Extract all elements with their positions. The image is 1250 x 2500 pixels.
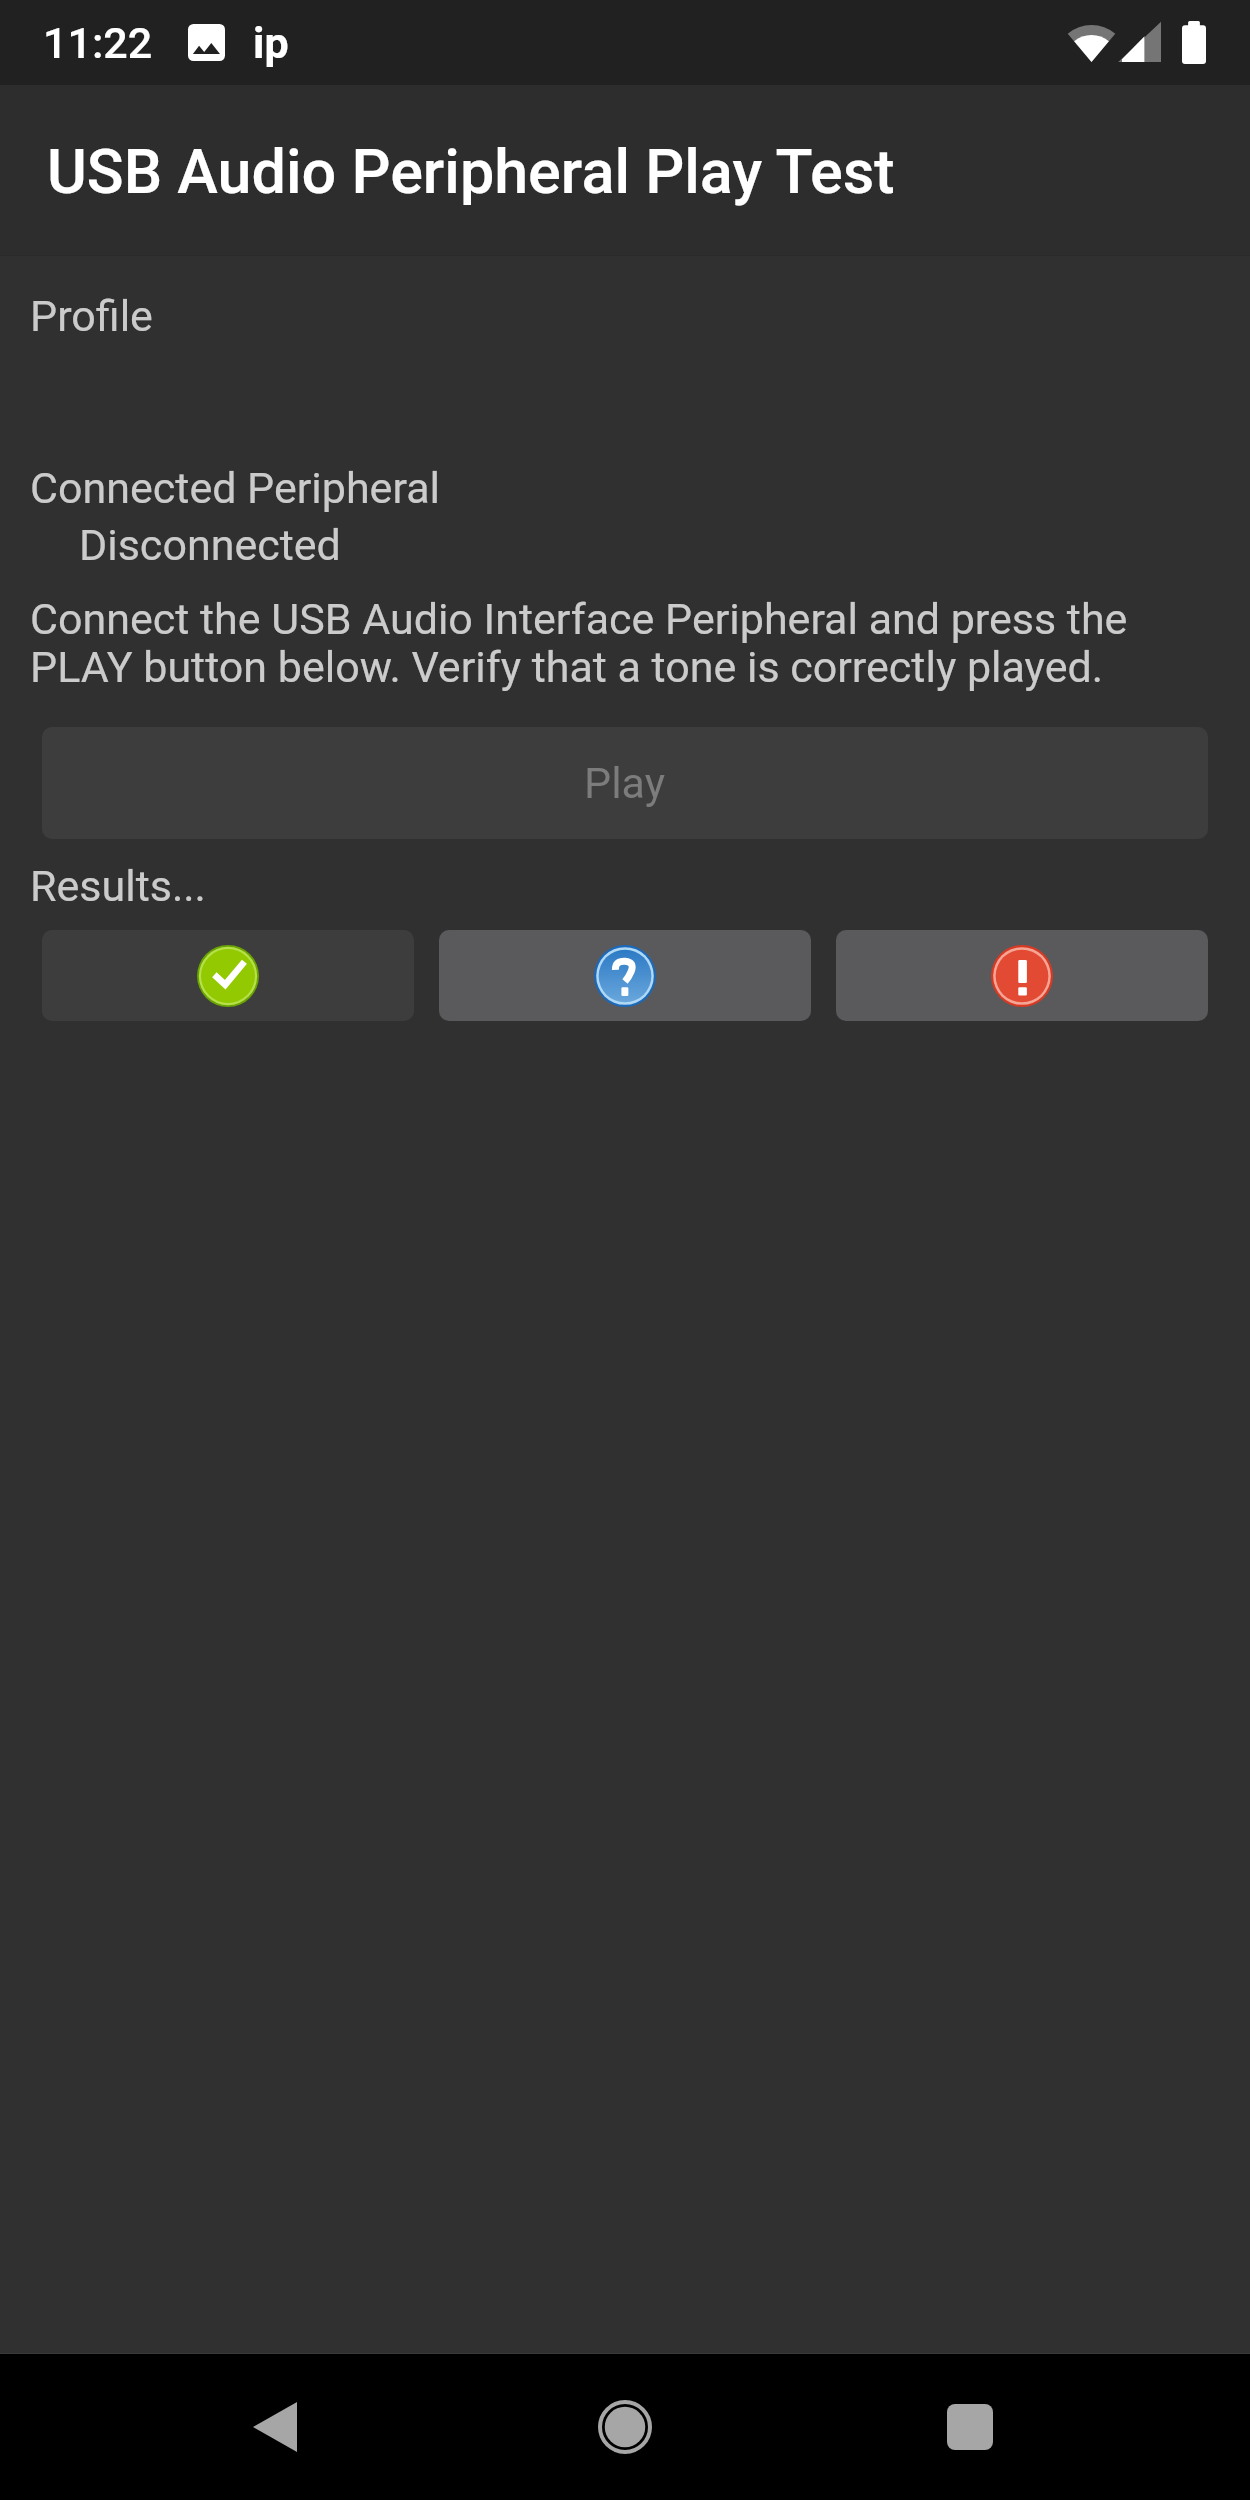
staticText: Connect the USB Audio Interface Peripher… bbox=[30, 596, 1220, 692]
staticText: Profile bbox=[30, 291, 153, 341]
staticText: Play bbox=[584, 758, 666, 808]
button[interactable]: Unknown bbox=[439, 930, 811, 1021]
staticText: Results... bbox=[30, 861, 206, 911]
button[interactable]: Fail bbox=[836, 930, 1208, 1021]
staticText: Disconnected bbox=[79, 520, 341, 570]
staticText: ip bbox=[253, 18, 289, 68]
button[interactable]: Play bbox=[42, 727, 1208, 839]
staticText: USB Audio Peripheral Play Test bbox=[47, 136, 895, 207]
button[interactable]: Home bbox=[500, 2354, 750, 2500]
button[interactable]: Recents bbox=[845, 2354, 1095, 2500]
staticText: Connected Peripheral bbox=[30, 463, 440, 513]
staticText: 11:22 bbox=[43, 18, 153, 68]
button[interactable]: Back bbox=[150, 2354, 400, 2500]
button[interactable]: Pass bbox=[42, 930, 414, 1021]
